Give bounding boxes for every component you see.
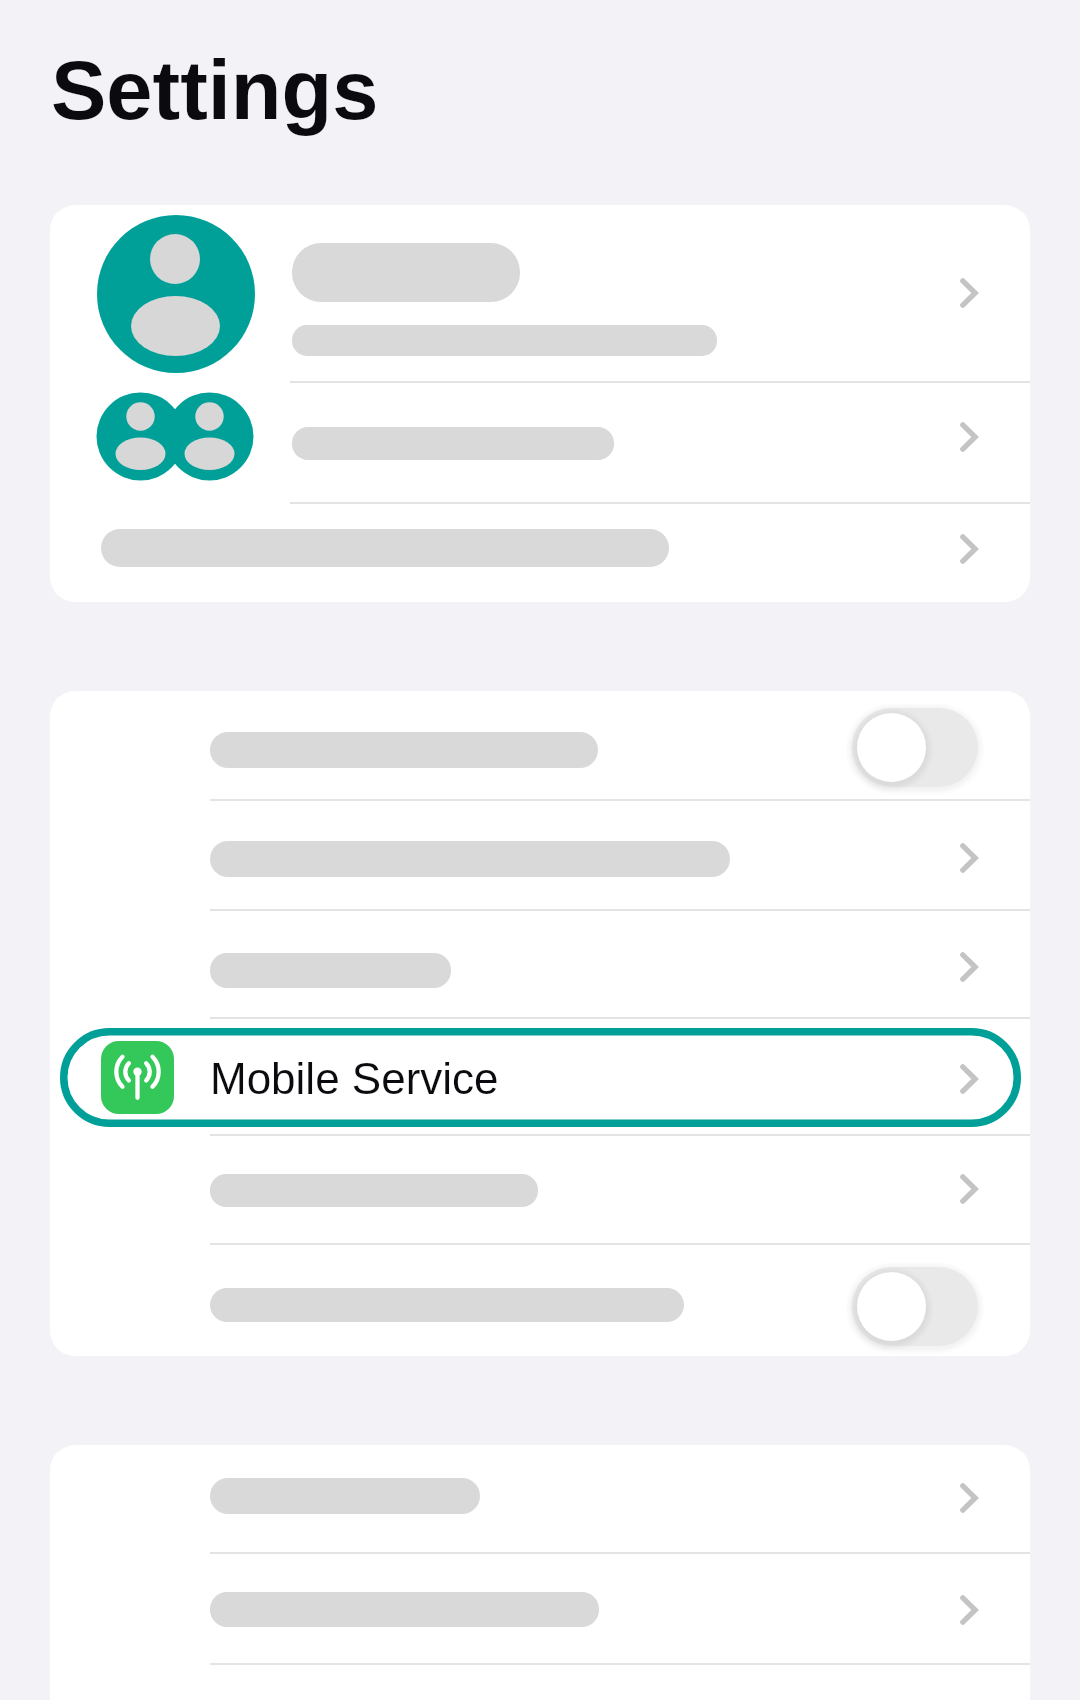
button[interactable]: Toggle bbox=[845, 701, 985, 794]
button[interactable]: Bluetooth bbox=[50, 911, 1030, 1018]
button[interactable]: Toggle bbox=[845, 1260, 985, 1353]
button[interactable]: Mobile Service icon bbox=[50, 1019, 1030, 1134]
button[interactable]: Notifications bbox=[50, 1445, 1030, 1552]
button[interactable]: Wi-Fi bbox=[50, 801, 1030, 909]
staticText: Settings bbox=[51, 44, 379, 137]
button[interactable]: Account alert bbox=[50, 504, 1030, 602]
button[interactable]: Sounds and haptics bbox=[50, 1554, 1030, 1663]
button[interactable]: Family sharing bbox=[50, 383, 1030, 502]
button[interactable]: Airplane mode bbox=[50, 691, 1030, 799]
other: Mobile Service icon bbox=[101, 1041, 174, 1114]
staticText: Mobile Service bbox=[210, 1054, 499, 1103]
button[interactable]: VPN bbox=[50, 1245, 1030, 1356]
button[interactable]: Apple Account bbox=[50, 205, 1030, 381]
button[interactable]: Personal hotspot bbox=[50, 1136, 1030, 1243]
